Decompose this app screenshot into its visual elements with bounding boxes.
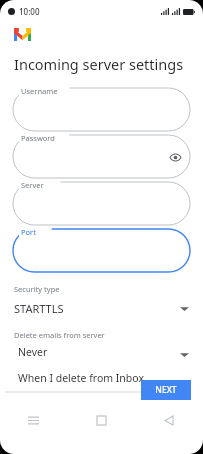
staticText: Delete emails from server bbox=[14, 330, 105, 340]
staticText: Security type bbox=[14, 284, 60, 294]
button[interactable]: Back bbox=[135, 408, 203, 432]
staticText: Never bbox=[18, 345, 48, 359]
button[interactable]: Server bbox=[0, 180, 203, 225]
button[interactable]: Show password bbox=[167, 149, 183, 165]
button[interactable]: Home bbox=[67, 408, 135, 432]
other: Expand bbox=[180, 306, 189, 312]
button[interactable]: NEXT bbox=[141, 380, 191, 400]
button[interactable]: Port bbox=[0, 227, 203, 272]
button[interactable]: Security type bbox=[0, 284, 203, 316]
staticText: Port bbox=[21, 227, 36, 237]
other: Expand bbox=[180, 352, 189, 358]
button[interactable]: Never bbox=[5, 339, 168, 365]
staticText: Username bbox=[21, 86, 58, 96]
button[interactable]: Delete emails from server bbox=[0, 330, 203, 362]
staticText: 10:00 bbox=[19, 6, 40, 17]
staticText: Incoming server settings bbox=[14, 54, 184, 74]
staticText: STARTTLS bbox=[14, 301, 64, 316]
button[interactable]: When I delete from Inbox bbox=[5, 365, 168, 391]
button[interactable]: Password bbox=[0, 133, 203, 178]
staticText: NEXT bbox=[155, 384, 177, 396]
staticText: When I delete from Inbox bbox=[18, 371, 144, 385]
staticText: Server bbox=[21, 180, 44, 190]
staticText: Password bbox=[21, 133, 55, 143]
button[interactable]: Recents bbox=[0, 408, 67, 432]
button[interactable]: Username bbox=[0, 86, 203, 131]
